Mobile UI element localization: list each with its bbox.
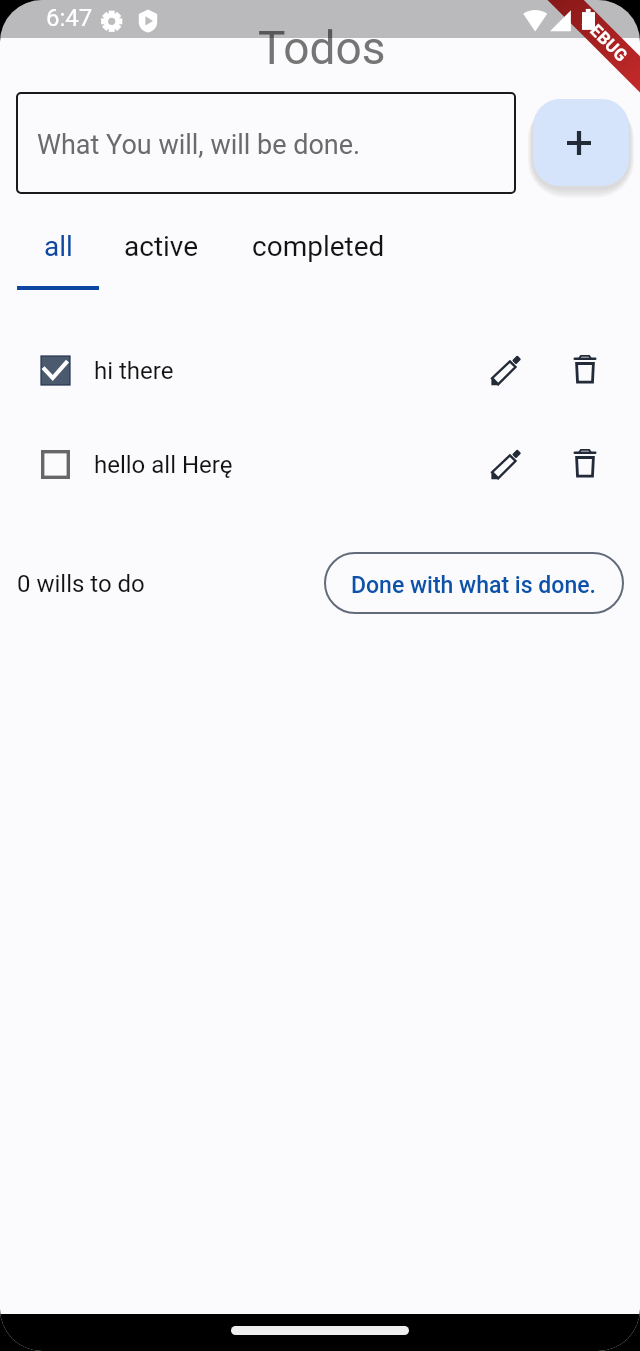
staticText: hello all Herę xyxy=(94,451,233,479)
button[interactable]: Edit xyxy=(485,442,529,486)
staticText: active xyxy=(124,230,199,263)
staticText: completed xyxy=(252,230,385,263)
button[interactable]: completed xyxy=(222,216,414,286)
staticText: 0 wills to do xyxy=(17,570,145,598)
button[interactable]: Edit xyxy=(485,348,529,392)
button[interactable]: active xyxy=(100,216,222,286)
button[interactable]: hi there xyxy=(0,348,640,392)
button[interactable]: What You will, will be done. xyxy=(16,92,516,194)
staticText: What You will, will be done. xyxy=(37,129,361,161)
staticText: 6:47 xyxy=(46,4,93,32)
button[interactable]: Delete xyxy=(563,348,607,392)
staticText: DEBUG xyxy=(578,12,632,66)
button[interactable]: all xyxy=(16,216,100,290)
button[interactable]: Add todo xyxy=(533,99,629,186)
button[interactable]: Done with what is done. xyxy=(324,552,624,614)
button[interactable]: hello all Herę xyxy=(0,442,640,486)
staticText: Done with what is done. xyxy=(351,572,596,599)
button[interactable]: Delete xyxy=(563,442,607,486)
staticText: all xyxy=(44,230,73,263)
staticText: Todos xyxy=(258,21,386,75)
staticText: hi there xyxy=(94,357,174,385)
